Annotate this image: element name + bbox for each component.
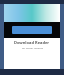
staticText: Download Reader [14,40,50,45]
button[interactable] [12,26,52,34]
staticText: for better reading [22,46,43,49]
